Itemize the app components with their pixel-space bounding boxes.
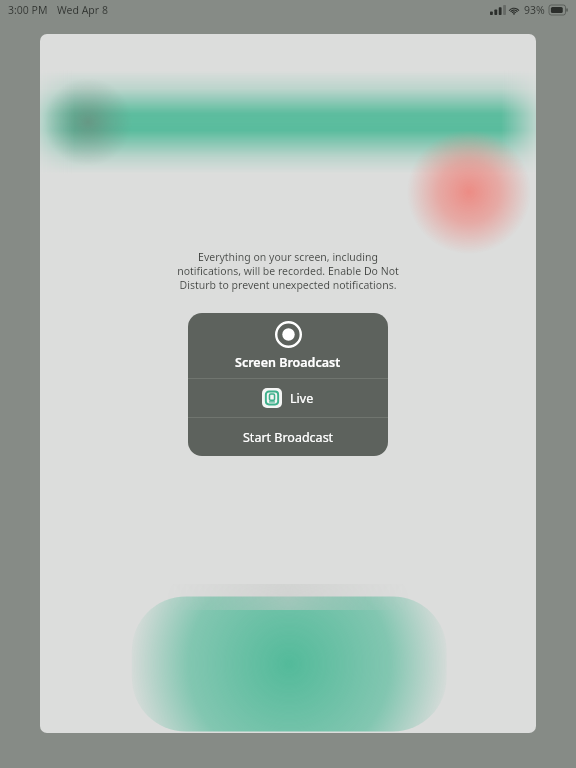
staticText: Everything on your screen, including not… xyxy=(177,250,399,292)
staticText: 3:00 PM xyxy=(8,3,48,17)
button[interactable]: Start Broadcast xyxy=(188,418,388,456)
staticText: Start Broadcast xyxy=(243,429,334,446)
staticText: 93% xyxy=(524,3,545,17)
other: Record xyxy=(275,321,302,348)
staticText: Wed Apr 8 xyxy=(57,3,108,17)
button[interactable]: Live xyxy=(188,379,388,417)
staticText: Screen Broadcast xyxy=(235,354,341,371)
staticText: Live xyxy=(290,390,314,407)
